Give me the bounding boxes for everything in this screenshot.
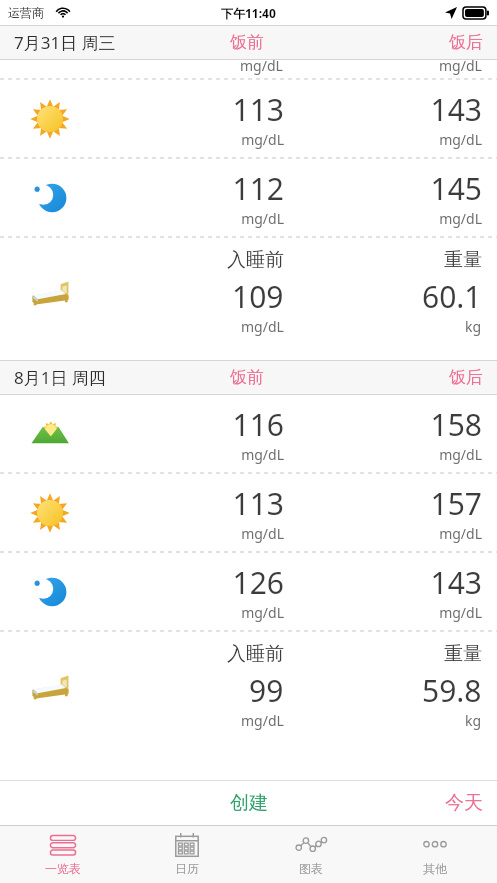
button[interactable]: 入睡前 <box>0 632 497 742</box>
other: 入睡前 <box>28 271 72 315</box>
staticText: 饭前 <box>230 367 264 388</box>
staticText: 入睡前 <box>227 642 284 666</box>
staticText: 126 <box>232 562 284 603</box>
staticText: mg/dL <box>439 209 482 228</box>
button[interactable]: 一览表 <box>0 826 125 883</box>
other: 晚上 <box>29 177 71 219</box>
staticText: 116 <box>232 404 284 445</box>
staticText: mg/dL <box>241 317 284 336</box>
staticText: 109 <box>232 276 284 317</box>
staticText: 一览表 <box>45 861 81 876</box>
other: 早上 <box>29 413 71 455</box>
staticText: kg <box>465 317 482 336</box>
staticText: mg/dL <box>241 130 284 149</box>
staticText: 入睡前 <box>227 248 284 272</box>
staticText: 重量 <box>444 248 482 272</box>
staticText: mg/dL <box>240 56 283 75</box>
staticText: mg/dL <box>241 524 284 543</box>
staticText: mg/dL <box>241 209 284 228</box>
staticText: 157 <box>430 483 482 524</box>
staticText: 其他 <box>423 861 447 876</box>
button[interactable]: 其他 <box>373 826 497 883</box>
staticText: 99 <box>249 670 284 711</box>
button[interactable]: 创建 <box>212 783 286 823</box>
staticText: 今天 <box>445 791 483 815</box>
staticText: 下午11:40 <box>221 5 276 21</box>
staticText: 饭前 <box>230 32 264 53</box>
other: 中午 <box>29 98 71 140</box>
staticText: mg/dL <box>439 524 482 543</box>
staticText: 饭后 <box>449 32 483 53</box>
staticText: mg/dL <box>439 603 482 622</box>
staticText: 113 <box>232 483 284 524</box>
button[interactable]: 入睡前 <box>0 238 497 348</box>
staticText: 8月1日 周四 <box>14 366 106 389</box>
other: 晚上 <box>29 571 71 613</box>
other: 中午 <box>29 492 71 534</box>
button[interactable]: 早上 <box>0 395 497 473</box>
button[interactable]: 晚上 <box>0 159 497 237</box>
staticText: 运营商 <box>8 5 44 20</box>
button[interactable]: 中午 <box>0 474 497 552</box>
button[interactable]: 图表 <box>249 826 373 883</box>
staticText: 创建 <box>230 791 268 815</box>
staticText: mg/dL <box>241 445 284 464</box>
staticText: 60.1 <box>422 276 482 317</box>
staticText: 重量 <box>444 642 482 666</box>
staticText: kg <box>465 711 482 730</box>
button[interactable]: 今天 <box>431 783 497 823</box>
staticText: mg/dL <box>241 603 284 622</box>
other: 入睡前 <box>28 665 72 709</box>
staticText: 145 <box>430 168 482 209</box>
staticText: mg/dL <box>439 445 482 464</box>
staticText: 图表 <box>299 861 323 876</box>
button[interactable]: 日历 <box>125 826 249 883</box>
button[interactable]: 中午 <box>0 80 497 158</box>
staticText: 7月31日 周三 <box>14 31 116 54</box>
staticText: 113 <box>232 89 284 130</box>
staticText: 143 <box>430 89 482 130</box>
staticText: mg/dL <box>439 56 482 75</box>
staticText: 59.8 <box>422 670 482 711</box>
staticText: 158 <box>430 404 482 445</box>
staticText: 143 <box>430 562 482 603</box>
staticText: mg/dL <box>241 711 284 730</box>
staticText: 112 <box>232 168 284 209</box>
staticText: 日历 <box>175 861 199 876</box>
staticText: 饭后 <box>449 367 483 388</box>
staticText: mg/dL <box>439 130 482 149</box>
button[interactable]: 晚上 <box>0 553 497 631</box>
